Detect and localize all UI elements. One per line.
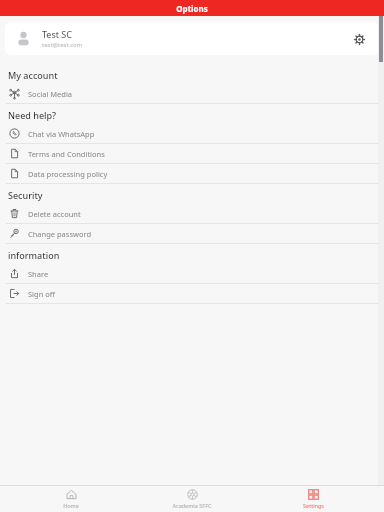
button[interactable]: Delete account: [0, 204, 384, 224]
button[interactable]: Account settings: [349, 29, 369, 49]
staticText: Test SC: [42, 28, 72, 40]
button[interactable]: Data processing policy: [0, 164, 384, 184]
button[interactable]: Social Media: [0, 84, 384, 104]
button[interactable]: Terms and Conditions: [0, 144, 384, 164]
staticText: My account: [8, 69, 58, 81]
button[interactable]: Chat via WhatsApp: [0, 124, 384, 144]
staticText: Academia SFFC: [172, 502, 212, 509]
staticText: Need help?: [8, 109, 57, 121]
staticText: Settings: [303, 502, 324, 509]
staticText: Delete account: [28, 209, 81, 219]
button[interactable]: Home: [21, 486, 121, 512]
button[interactable]: Test SC: [5, 22, 379, 55]
button[interactable]: Settings: [263, 486, 363, 512]
button[interactable]: Academia SFFC: [142, 486, 242, 512]
staticText: Security: [8, 189, 43, 201]
staticText: Change password: [28, 229, 92, 239]
staticText: test@test.com: [42, 41, 83, 49]
staticText: Chat via WhatsApp: [28, 129, 95, 139]
button[interactable]: Share: [0, 264, 384, 284]
button[interactable]: Sign off: [0, 284, 384, 304]
staticText: Home: [63, 502, 79, 509]
staticText: information: [8, 249, 60, 261]
staticText: Share: [28, 269, 49, 279]
staticText: Sign off: [28, 289, 55, 299]
staticText: Terms and Conditions: [28, 149, 105, 159]
staticText: Data processing policy: [28, 169, 108, 179]
staticText: Options: [176, 3, 208, 14]
staticText: Social Media: [28, 89, 73, 99]
button[interactable]: Change password: [0, 224, 384, 244]
